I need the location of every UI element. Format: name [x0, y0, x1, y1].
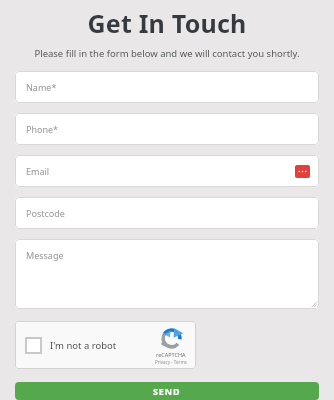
button[interactable]: I'm not a robot checkbox	[25, 337, 42, 354]
button[interactable]: Message	[15, 239, 319, 309]
staticText: Please fill in the form below and we wil…	[0, 47, 334, 60]
staticText: SEND	[153, 385, 181, 397]
staticText: I'm not a robot	[50, 339, 117, 352]
staticText: Privacy - Terms	[155, 359, 187, 365]
staticText: reCAPTCHA	[156, 351, 186, 358]
button[interactable]: Email	[15, 155, 319, 187]
staticText: Postcode	[26, 207, 65, 219]
staticText: Message	[26, 249, 64, 261]
staticText: Name*	[26, 81, 57, 93]
button[interactable]: SEND	[15, 382, 319, 400]
staticText: Get In Touch	[0, 6, 334, 40]
button[interactable]: Name*	[15, 71, 319, 103]
button[interactable]: Postcode	[15, 197, 319, 229]
button[interactable]: Phone*	[15, 113, 319, 145]
button[interactable]: I'm not a robot checkbox	[15, 321, 196, 369]
button[interactable]: Autofill suggestions	[295, 165, 310, 178]
staticText: Phone*	[26, 123, 59, 135]
staticText: Email	[26, 165, 50, 177]
